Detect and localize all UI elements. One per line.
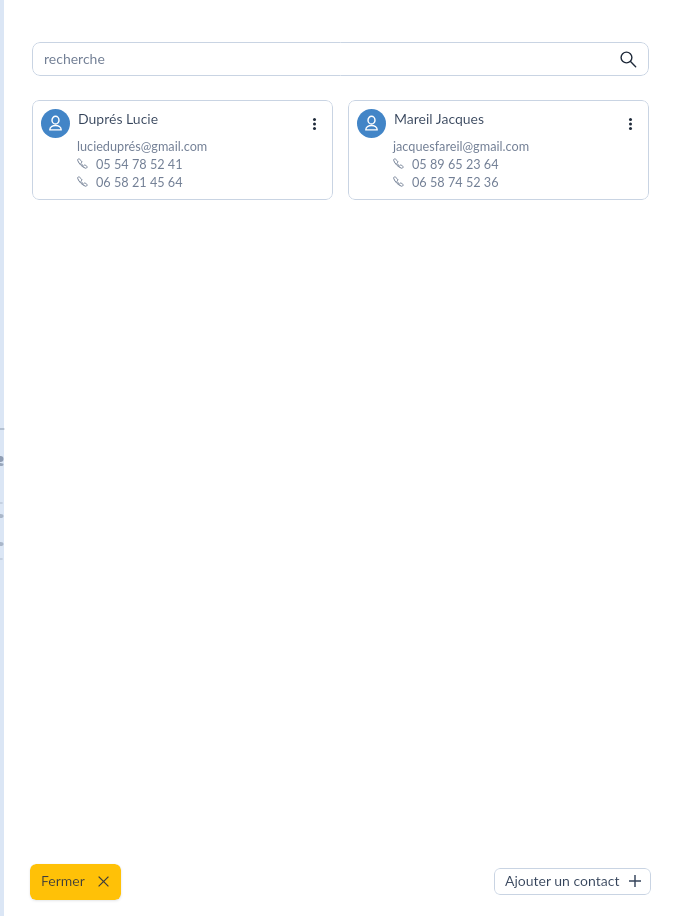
button[interactable]: Ajouter un contact <box>494 868 651 895</box>
staticText: recherche <box>44 50 105 67</box>
staticText: 05 54 78 52 41 <box>96 156 183 171</box>
button[interactable]: Search <box>620 51 638 69</box>
staticText: Ajouter un contact <box>505 872 620 889</box>
staticText: Mareil Jacques <box>394 110 485 127</box>
staticText: 05 89 65 23 64 <box>412 156 499 171</box>
button[interactable]: Mareil Jacques <box>348 100 649 200</box>
button[interactable]: Fermer <box>30 864 121 900</box>
button[interactable]: recherche <box>32 42 649 76</box>
staticText: Fermer <box>41 872 85 889</box>
staticText: jacquesfareil@gmail.com <box>393 138 530 153</box>
staticText: Duprés Lucie <box>78 110 159 127</box>
staticText: 06 58 74 52 36 <box>412 174 499 189</box>
staticText: lucieduprés@gmail.com <box>77 138 208 153</box>
button[interactable]: More options <box>302 112 326 136</box>
staticText: 06 58 21 45 64 <box>96 174 183 189</box>
button[interactable]: More options <box>618 112 642 136</box>
button[interactable]: Duprés Lucie <box>32 100 333 200</box>
